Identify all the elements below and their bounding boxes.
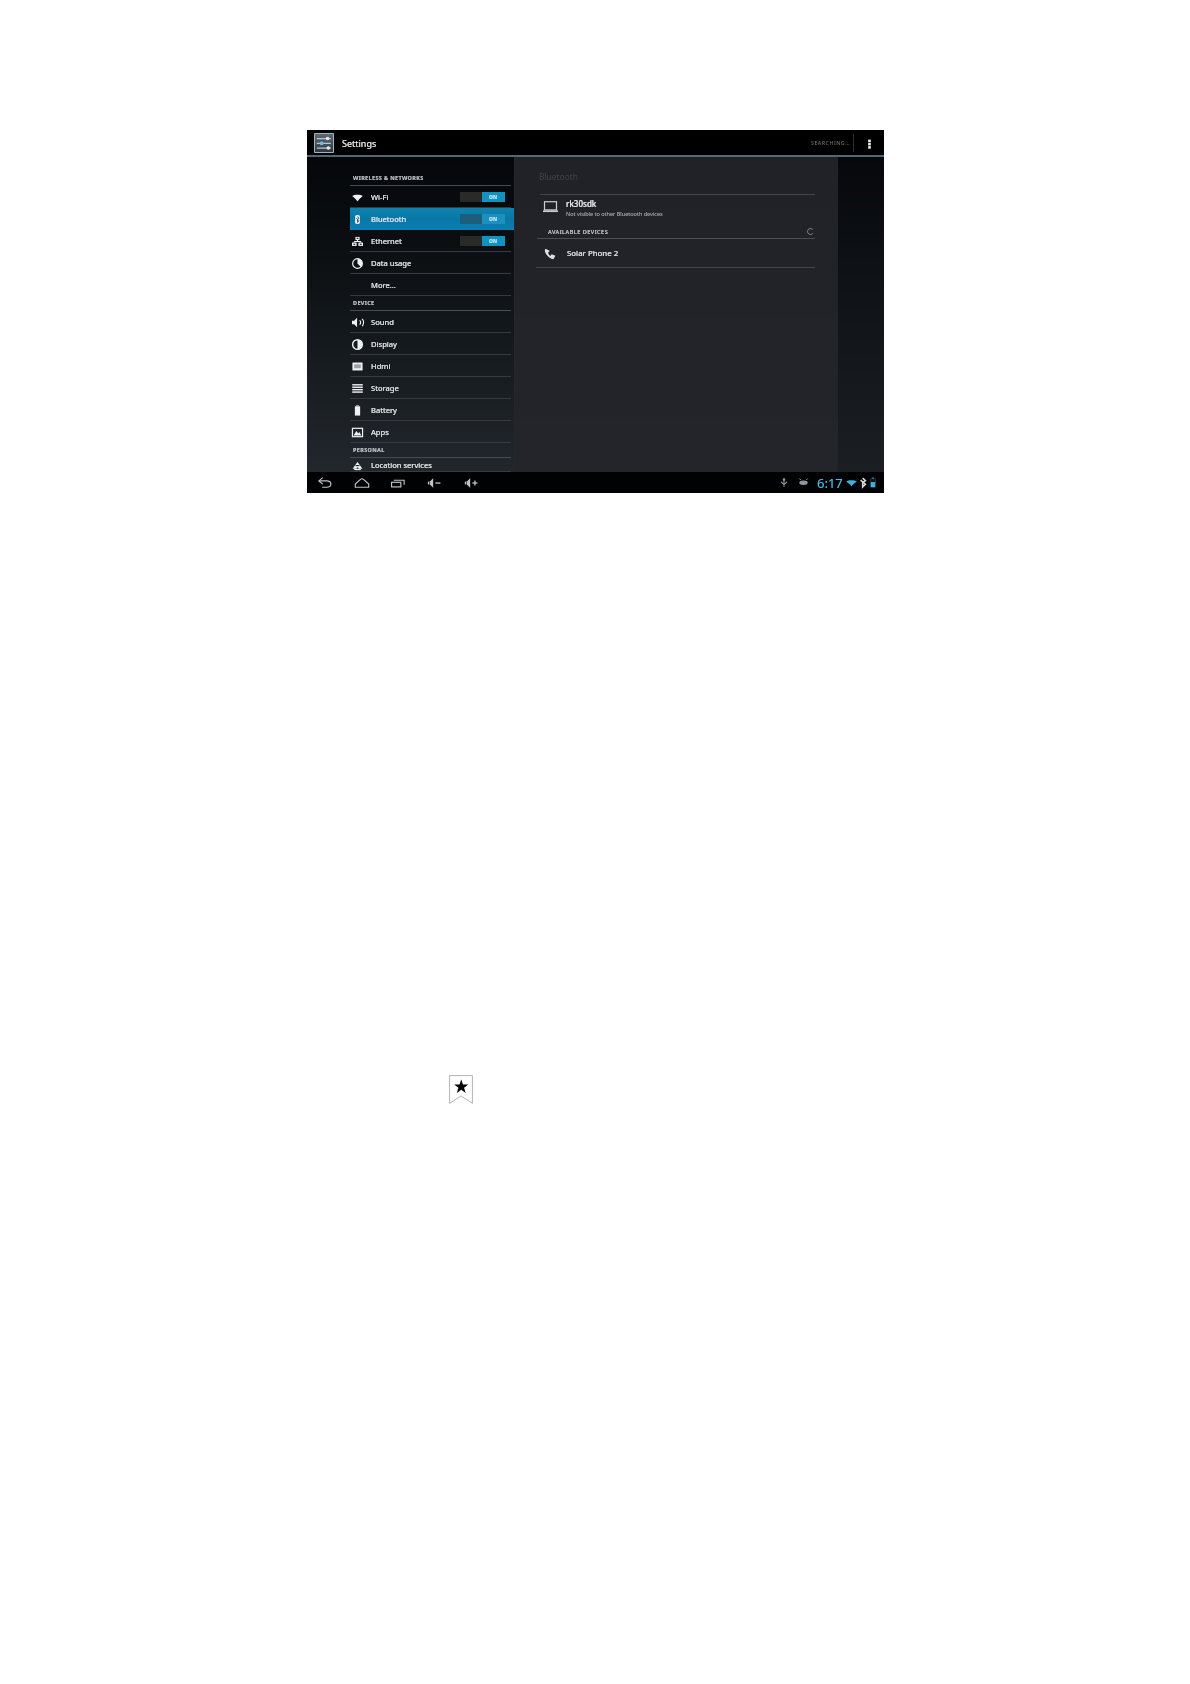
staticText: Data usage	[371, 258, 412, 268]
button[interactable]: Bookmark	[449, 1075, 473, 1104]
button[interactable]: More...	[350, 274, 514, 296]
button[interactable]: Solar Phone 2	[515, 241, 838, 265]
button[interactable]: Back	[317, 475, 333, 491]
staticText: Battery	[371, 405, 397, 415]
staticText: Settings	[342, 137, 377, 149]
button[interactable]: Wi-Fi	[350, 186, 514, 208]
staticText: Bluetooth	[371, 214, 407, 224]
button[interactable]: Storage	[350, 377, 514, 399]
button[interactable]: Home	[354, 475, 370, 491]
staticText: Sound	[371, 317, 394, 327]
button[interactable]: Settings app icon	[315, 134, 333, 152]
button[interactable]: Recents	[390, 475, 406, 491]
button[interactable]: rk30sdk	[515, 195, 838, 219]
staticText: rk30sdk	[566, 198, 597, 209]
button[interactable]: More options	[861, 135, 877, 151]
staticText: PERSONAL	[353, 446, 385, 453]
staticText: AVAILABLE DEVICES	[548, 228, 609, 236]
staticText: Bluetooth	[539, 171, 578, 182]
staticText: SEARCHING…	[811, 139, 850, 146]
button[interactable]: Data usage	[350, 252, 514, 274]
staticText: ON	[489, 216, 498, 223]
staticText: Solar Phone 2	[567, 248, 619, 259]
staticText: Location services	[371, 460, 432, 470]
button[interactable]: Volume up	[463, 475, 479, 491]
staticText: Wi-Fi	[371, 192, 389, 202]
button[interactable]: Hdmi	[350, 355, 514, 377]
button[interactable]: Display	[350, 333, 514, 355]
button[interactable]: Bluetooth	[350, 208, 514, 230]
button[interactable]: Volume down	[426, 475, 442, 491]
staticText: Storage	[371, 383, 399, 393]
staticText: More...	[371, 280, 396, 290]
button[interactable]: Ethernet	[350, 230, 514, 252]
staticText: Not visible to other Bluetooth devices	[566, 210, 663, 217]
button[interactable]: Location services	[350, 458, 514, 472]
staticText: ON	[489, 238, 498, 245]
button[interactable]: Battery	[350, 399, 514, 421]
staticText: 6:17	[817, 474, 843, 492]
staticText: Apps	[371, 427, 389, 437]
staticText: Display	[371, 339, 397, 349]
staticText: WIRELESS & NETWORKS	[353, 174, 424, 181]
staticText: Hdmi	[371, 361, 391, 371]
staticText: ON	[489, 194, 498, 201]
button[interactable]: Apps	[350, 421, 514, 443]
staticText: DEVICE	[353, 299, 375, 306]
button[interactable]: Sound	[350, 311, 514, 333]
staticText: Ethernet	[371, 236, 402, 246]
